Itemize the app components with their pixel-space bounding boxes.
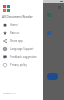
staticText: Rate us [10, 31, 20, 35]
staticText: Version 1.0 [3, 91, 16, 94]
staticText: Home [10, 23, 18, 27]
staticText: Privacy policy [10, 63, 27, 67]
staticText: Language Support [10, 47, 34, 51]
button[interactable]: Add [47, 73, 58, 80]
staticText: Share app [10, 39, 23, 43]
button[interactable]: Feedback suggestion [0, 53, 43, 61]
button[interactable]: Language Support [0, 45, 43, 53]
button[interactable]: Privacy policy [0, 61, 43, 69]
button[interactable]: Rate us [0, 29, 43, 37]
staticText: Feedback suggestion [10, 55, 37, 59]
button[interactable]: Home [0, 21, 43, 29]
staticText: All Document Reader [2, 15, 33, 19]
button[interactable]: Share app [0, 37, 43, 45]
